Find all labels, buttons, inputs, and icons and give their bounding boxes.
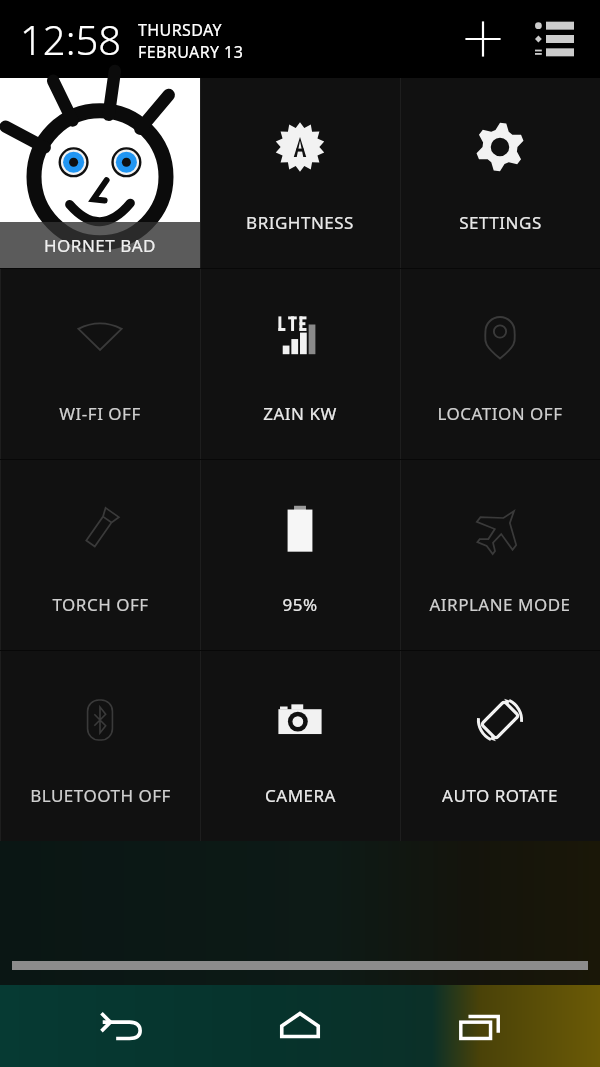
staticText: THURSDAY	[138, 19, 223, 41]
button[interactable]: Quick settings list	[526, 11, 582, 67]
button[interactable]: CAMERA	[200, 651, 400, 841]
button[interactable]: TORCH OFF	[0, 460, 200, 650]
button[interactable]: 95%	[200, 460, 400, 650]
button[interactable]: SETTINGS	[400, 78, 600, 268]
staticText: SETTINGS	[459, 211, 542, 234]
button[interactable]: BLUETOOTH OFF	[0, 651, 200, 841]
staticText: WI-FI OFF	[59, 402, 141, 425]
button[interactable]: BRIGHTNESS	[200, 78, 400, 268]
button[interactable]: ZAIN KW	[200, 269, 400, 459]
staticText: CAMERA	[265, 784, 336, 807]
staticText: BRIGHTNESS	[246, 211, 354, 234]
staticText: HORNET BAD	[44, 234, 157, 257]
staticText: 95%	[282, 593, 318, 616]
button[interactable]: HORNET BAD	[0, 78, 200, 268]
button[interactable]: LOCATION OFF	[400, 269, 600, 459]
button[interactable]: WI-FI OFF	[0, 269, 200, 459]
button[interactable]: Add	[454, 10, 512, 68]
staticText: LOCATION OFF	[437, 402, 563, 425]
button[interactable]: Back	[60, 985, 180, 1067]
button[interactable]: AIRPLANE MODE	[400, 460, 600, 650]
button[interactable]: AUTO ROTATE	[400, 651, 600, 841]
button[interactable]: Recent apps	[420, 985, 540, 1067]
staticText: BLUETOOTH OFF	[30, 784, 171, 807]
staticText: FEBRUARY 13	[138, 41, 244, 63]
button[interactable]: Home	[240, 985, 360, 1067]
staticText: AUTO ROTATE	[442, 784, 558, 807]
staticText: 12:58	[20, 12, 122, 66]
staticText: TORCH OFF	[52, 593, 149, 616]
staticText: AIRPLANE MODE	[429, 593, 571, 616]
staticText: ZAIN KW	[263, 402, 337, 425]
